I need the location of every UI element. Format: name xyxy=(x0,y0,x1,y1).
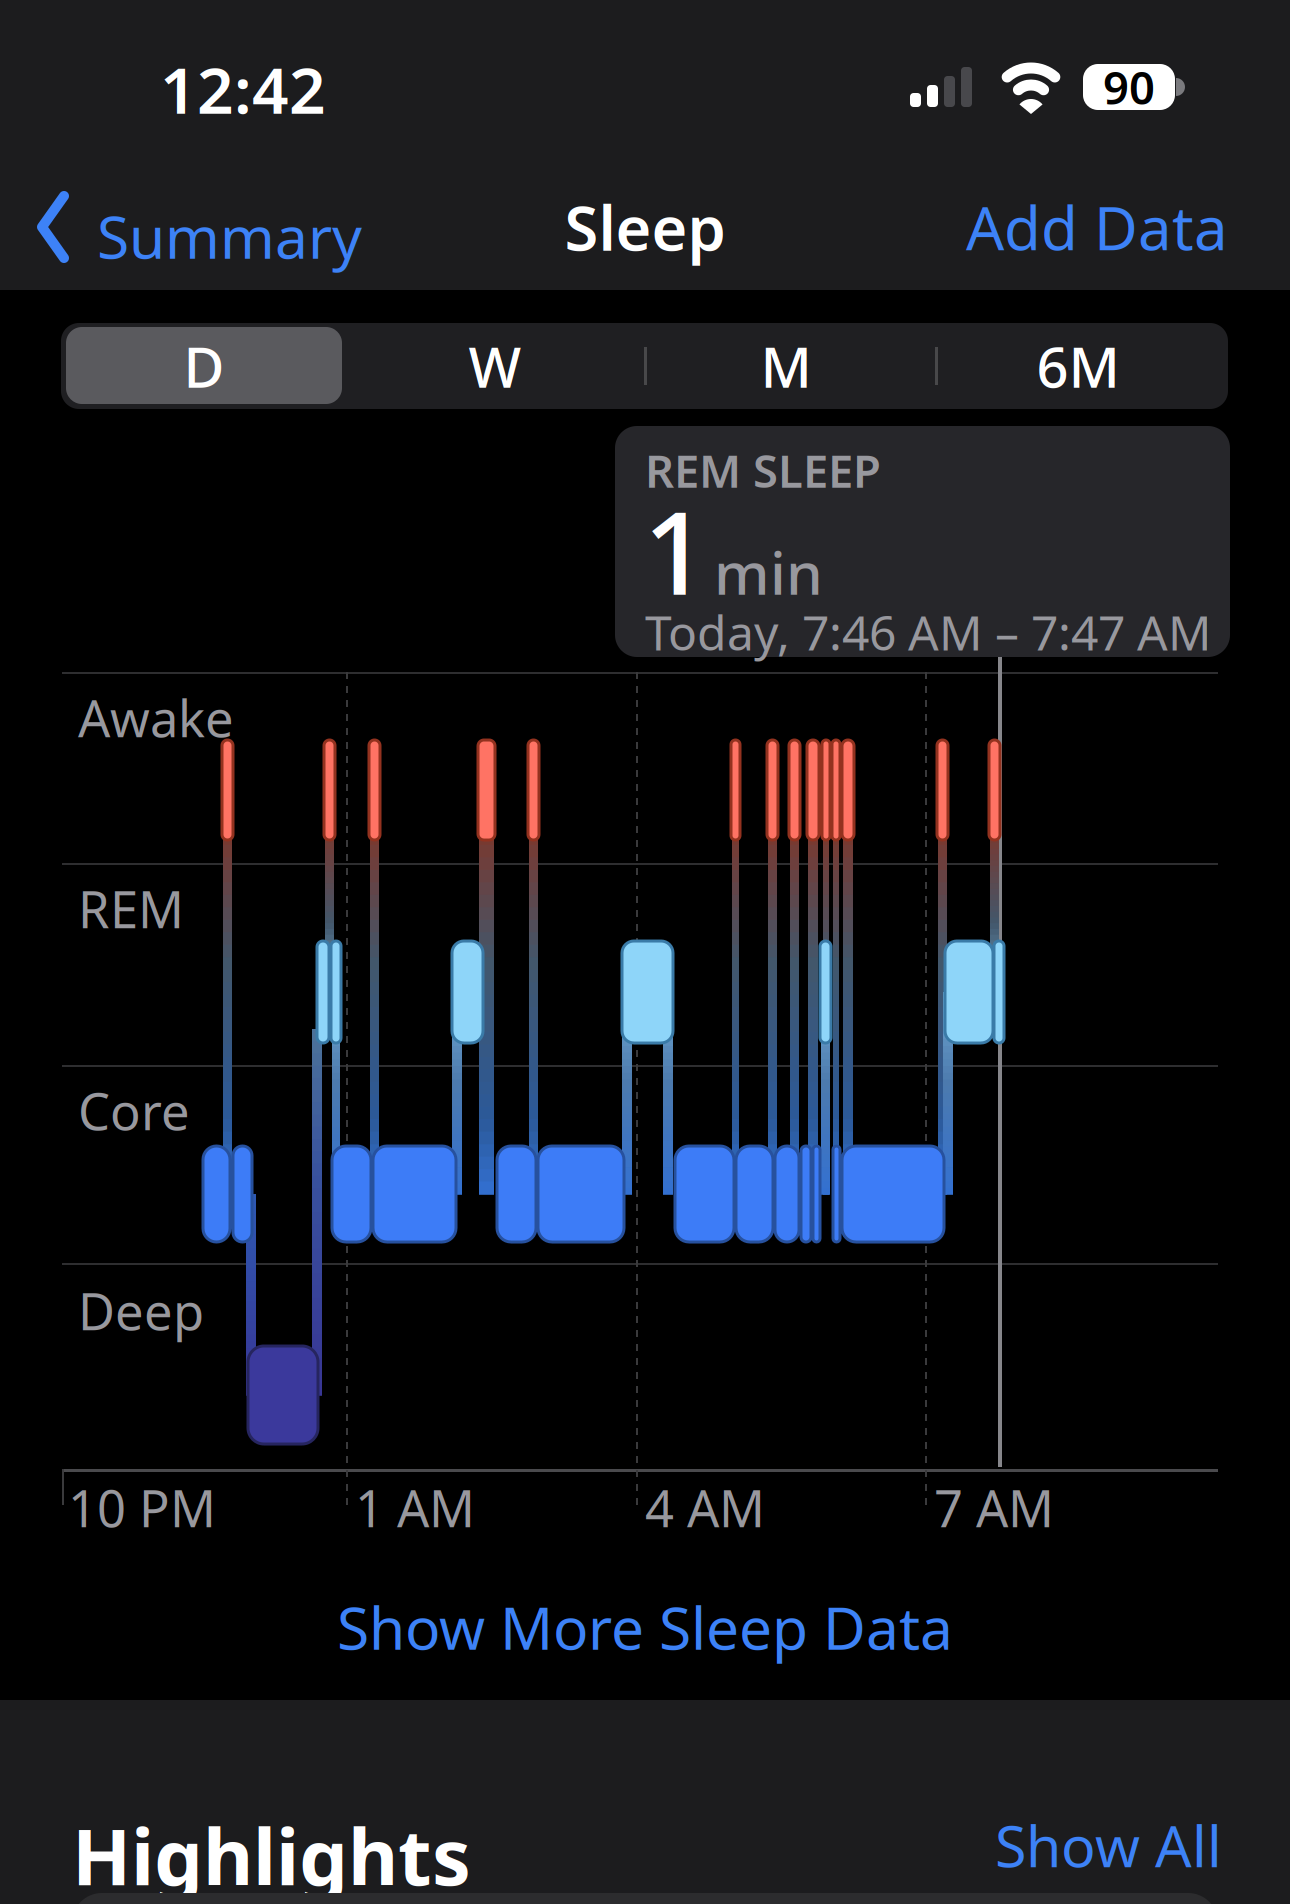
staticText: D xyxy=(183,329,224,403)
staticText: 1 AM xyxy=(355,1474,475,1541)
staticText: 10 PM xyxy=(68,1474,216,1541)
staticText: Core xyxy=(78,1077,190,1144)
staticText: 7 AM xyxy=(934,1474,1054,1541)
staticText: Show All xyxy=(995,1807,1222,1883)
staticText: Show More Sleep Data xyxy=(337,1588,953,1666)
staticText: Sleep xyxy=(564,186,725,268)
staticText: 12:42 xyxy=(160,46,326,131)
staticText: W xyxy=(468,329,521,403)
staticText: 6M xyxy=(1036,329,1119,403)
staticText: REM SLEEP xyxy=(645,440,881,500)
staticText: 4 AM xyxy=(645,1474,765,1541)
button[interactable]: Show All xyxy=(0,1815,1222,1875)
staticText: min xyxy=(714,533,823,611)
button[interactable]: D xyxy=(64,326,344,406)
button[interactable]: Summary xyxy=(0,0,340,290)
staticText: 1 xyxy=(643,474,709,626)
button[interactable]: M xyxy=(646,326,926,406)
button[interactable]: Add Data xyxy=(0,197,1228,257)
staticText: REM xyxy=(78,875,184,942)
staticText: Summary xyxy=(97,197,362,275)
staticText: 90 xyxy=(1103,57,1155,117)
button[interactable]: Show More Sleep Data xyxy=(337,1588,953,1666)
staticText: Highlights xyxy=(72,1804,471,1904)
staticText: Deep xyxy=(78,1277,204,1344)
button[interactable]: 6M xyxy=(938,326,1218,406)
staticText: M xyxy=(760,329,811,403)
staticText: Add Data xyxy=(966,187,1228,267)
staticText: Today, 7:46 AM – 7:47 AM xyxy=(645,600,1212,664)
staticText: Awake xyxy=(78,684,234,751)
button[interactable]: W xyxy=(355,326,635,406)
